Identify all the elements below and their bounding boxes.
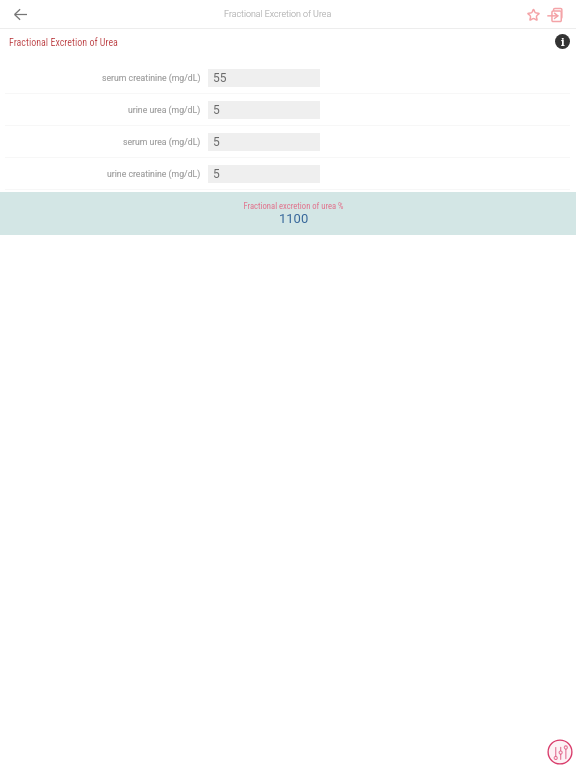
staticText: Fractional Excretion of Urea [9, 37, 118, 49]
button[interactable]: serum urea (mg/dL) [0, 126, 576, 157]
staticText: 5 [213, 135, 220, 149]
button[interactable]: Adjust settings [546, 738, 574, 766]
button[interactable]: urine creatinine (mg/dL) [0, 158, 576, 189]
button[interactable]: urine urea (mg/dL) [0, 94, 576, 125]
staticText: serum urea (mg/dL) [123, 137, 201, 147]
staticText: Fractional excretion of urea % [243, 201, 344, 211]
staticText: urine urea (mg/dL) [128, 105, 201, 115]
staticText: 55 [213, 71, 227, 85]
staticText: 5 [213, 167, 220, 181]
button[interactable]: serum creatinine (mg/dL) [0, 62, 576, 93]
staticText: Fractional Excretion of Urea [224, 9, 332, 19]
button[interactable]: Favorite [520, 1, 547, 28]
staticText: 1100 [279, 211, 309, 226]
button[interactable]: Back [7, 1, 34, 28]
staticText: serum creatinine (mg/dL) [102, 73, 201, 83]
button[interactable]: Export [541, 1, 568, 28]
staticText: urine creatinine (mg/dL) [107, 169, 201, 179]
button[interactable]: Info [551, 30, 573, 52]
staticText: 5 [213, 103, 220, 117]
staticText: i [561, 35, 565, 49]
